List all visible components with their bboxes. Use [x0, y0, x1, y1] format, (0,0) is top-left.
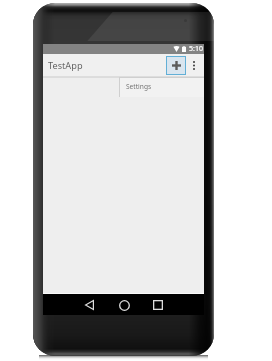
button[interactable]: More options [186, 56, 202, 75]
button[interactable]: Add [166, 56, 186, 75]
staticText: 5:10 [189, 44, 203, 54]
button[interactable]: Back [82, 298, 96, 312]
staticText: Settings [126, 82, 152, 91]
button[interactable]: Settings [119, 77, 204, 97]
staticText: TestApp [48, 59, 83, 72]
button[interactable]: Home [117, 298, 131, 312]
button[interactable]: Recents [151, 298, 165, 312]
